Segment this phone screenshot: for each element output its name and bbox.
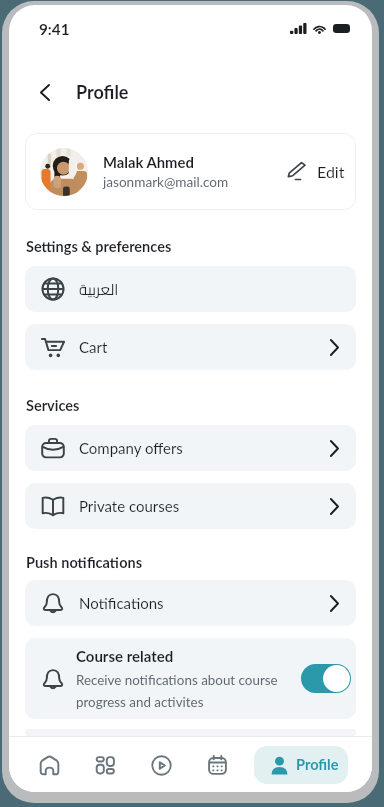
button[interactable]: Dashboard xyxy=(77,743,133,787)
staticText: Course related xyxy=(76,647,174,665)
staticText: العربية xyxy=(79,275,119,303)
staticText: Cart xyxy=(79,338,108,356)
staticText: Settings & preferences xyxy=(26,238,172,255)
button[interactable]: العربية xyxy=(25,266,356,312)
button[interactable]: Cart xyxy=(25,324,356,370)
button[interactable]: Home xyxy=(21,743,77,787)
button[interactable]: Course related xyxy=(25,638,356,719)
button[interactable]: Private courses xyxy=(25,483,356,529)
button[interactable]: Back xyxy=(30,78,58,106)
button[interactable]: Calendar xyxy=(189,743,245,787)
staticText: Notifications xyxy=(79,594,164,612)
staticText: Profile xyxy=(296,756,339,774)
staticText: Edit xyxy=(317,162,345,181)
staticText: Profile xyxy=(76,81,129,103)
staticText: jasonmark@mail.com xyxy=(103,174,229,190)
button[interactable]: Toggle course related notifications xyxy=(301,664,351,693)
button[interactable]: Malak Ahmed xyxy=(25,133,356,210)
button[interactable]: Notifications xyxy=(25,580,356,626)
staticText: Services xyxy=(26,397,80,414)
button[interactable]: Courses xyxy=(133,743,189,787)
button[interactable]: Company offers xyxy=(25,425,356,471)
button[interactable]: Edit xyxy=(284,156,345,187)
button[interactable]: Profile xyxy=(254,746,348,784)
staticText: Private courses xyxy=(79,497,180,515)
staticText: Receive notifications about course progr… xyxy=(76,672,293,710)
staticText: Malak Ahmed xyxy=(103,153,194,171)
staticText: Company offers xyxy=(79,439,183,457)
staticText: 9:41 xyxy=(39,20,70,38)
staticText: Push notifications xyxy=(26,554,143,571)
